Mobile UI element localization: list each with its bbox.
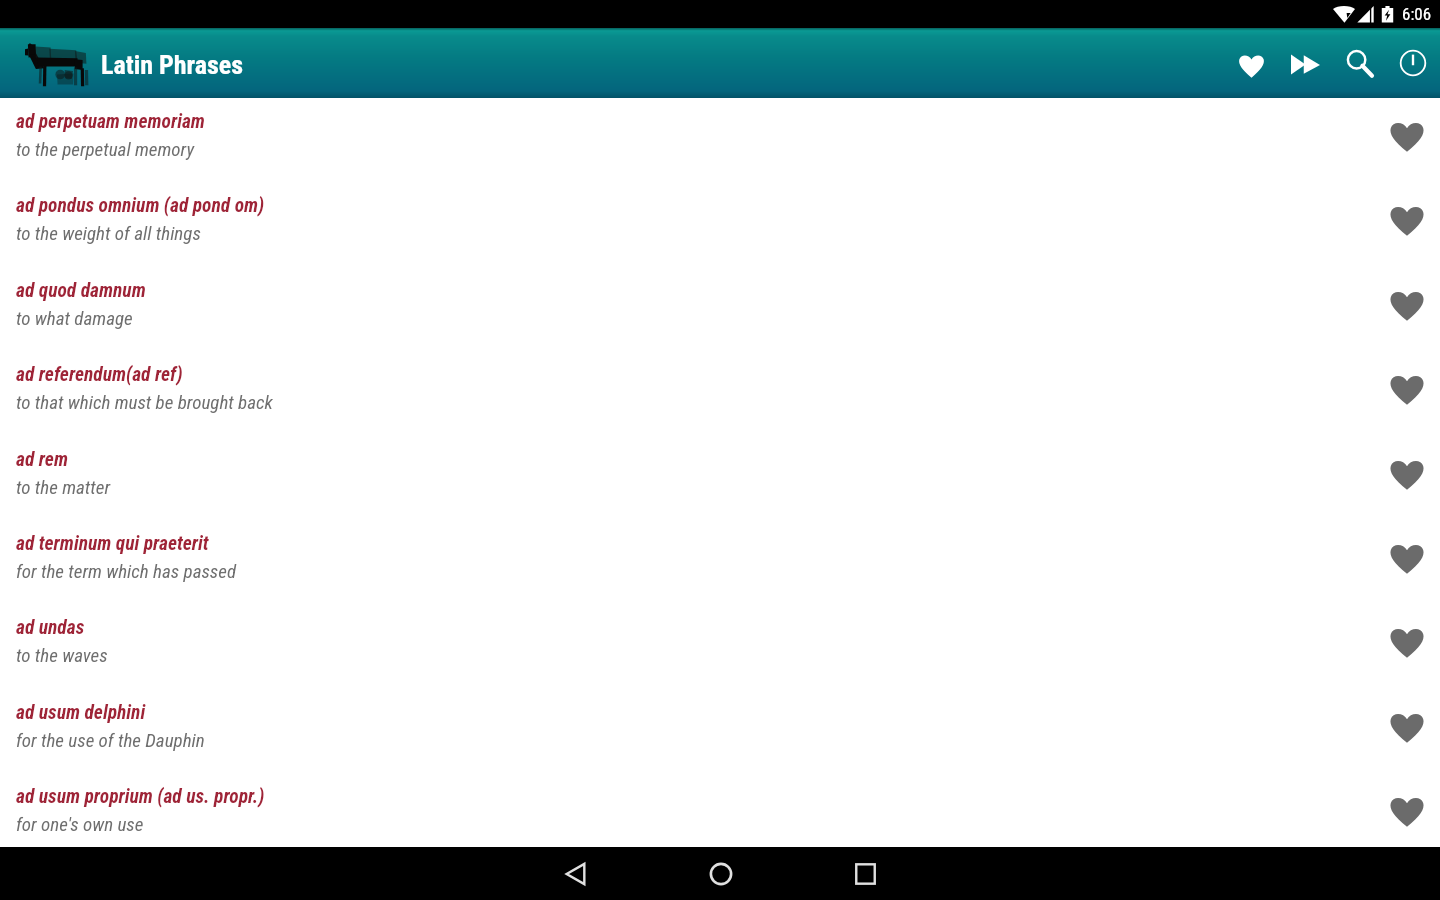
- staticText: for one's own use: [16, 813, 144, 835]
- staticText: for the term which has passed: [16, 560, 237, 582]
- button[interactable]: ad undas: [0, 604, 1440, 688]
- staticText: to the perpetual memory: [16, 138, 195, 160]
- staticText: to the weight of all things: [16, 222, 201, 244]
- staticText: to what damage: [16, 307, 133, 329]
- button[interactable]: Home: [648, 847, 793, 900]
- button[interactable]: ad referendum(ad ref): [0, 351, 1440, 435]
- button[interactable]: ad perpetuam memoriam: [0, 98, 1440, 182]
- staticText: to that which must be brought back: [16, 391, 273, 413]
- staticText: for the use of the Dauphin: [16, 729, 205, 751]
- button[interactable]: Favorites: [1224, 28, 1278, 98]
- button[interactable]: Recent apps: [793, 847, 938, 900]
- staticText: ad pondus omnium (ad pond om): [16, 194, 265, 217]
- staticText: ad referendum(ad ref): [16, 363, 183, 386]
- button[interactable]: ad usum proprium (ad us. propr.): [0, 773, 1440, 847]
- button[interactable]: Add to favorites: [1374, 98, 1440, 182]
- button[interactable]: Add to favorites: [1374, 182, 1440, 266]
- staticText: ad perpetuam memoriam: [16, 110, 205, 133]
- button[interactable]: Back: [503, 847, 648, 900]
- staticText: Latin Phrases: [101, 50, 244, 80]
- button[interactable]: Add to favorites: [1374, 773, 1440, 847]
- button[interactable]: ad terminum qui praeterit: [0, 520, 1440, 604]
- staticText: ad usum proprium (ad us. propr.): [16, 785, 265, 808]
- button[interactable]: Add to favorites: [1374, 267, 1440, 351]
- button[interactable]: Add to favorites: [1374, 351, 1440, 435]
- button[interactable]: Next phrase: [1278, 28, 1332, 98]
- button[interactable]: ad rem: [0, 436, 1440, 520]
- button[interactable]: ad pondus omnium (ad pond om): [0, 182, 1440, 266]
- staticText: ad undas: [16, 616, 85, 639]
- staticText: ad terminum qui praeterit: [16, 532, 209, 555]
- button[interactable]: Add to favorites: [1374, 520, 1440, 604]
- button[interactable]: Add to favorites: [1374, 689, 1440, 773]
- staticText: ad quod damnum: [16, 279, 146, 302]
- button[interactable]: Add to favorites: [1374, 604, 1440, 688]
- staticText: ad rem: [16, 448, 68, 471]
- staticText: to the matter: [16, 476, 111, 498]
- staticText: to the waves: [16, 644, 108, 666]
- button[interactable]: About: [1386, 28, 1440, 98]
- button[interactable]: Search: [1332, 28, 1386, 98]
- button[interactable]: ad usum delphini: [0, 689, 1440, 773]
- staticText: ad usum delphini: [16, 701, 146, 724]
- button[interactable]: Add to favorites: [1374, 436, 1440, 520]
- button[interactable]: ad quod damnum: [0, 267, 1440, 351]
- staticText: 6:06: [1402, 4, 1432, 24]
